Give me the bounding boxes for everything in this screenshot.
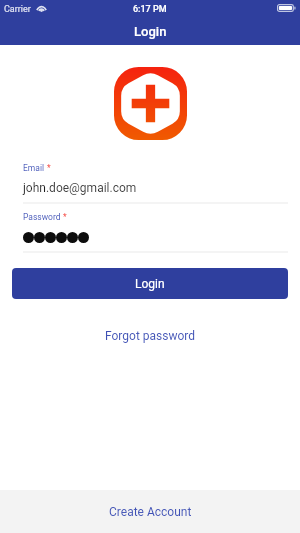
staticText: Login xyxy=(135,277,165,291)
staticText: * xyxy=(61,212,67,222)
other: Battery full xyxy=(277,4,296,12)
button[interactable]: Forgot password xyxy=(95,327,206,345)
staticText: Create Account xyxy=(109,505,192,519)
button[interactable]: Create Account xyxy=(0,490,300,533)
staticText: Login xyxy=(134,24,167,39)
staticText: * xyxy=(45,163,51,173)
staticText: Forgot password xyxy=(105,329,196,343)
staticText: Carrier xyxy=(4,4,31,15)
staticText: Email xyxy=(23,163,45,173)
staticText: Password xyxy=(23,212,61,222)
staticText: 6:17 PM xyxy=(133,4,167,15)
staticText: john.doe@gmail.com xyxy=(23,181,137,195)
other: Wifi signal xyxy=(36,4,47,12)
button[interactable]: Login xyxy=(12,268,288,299)
